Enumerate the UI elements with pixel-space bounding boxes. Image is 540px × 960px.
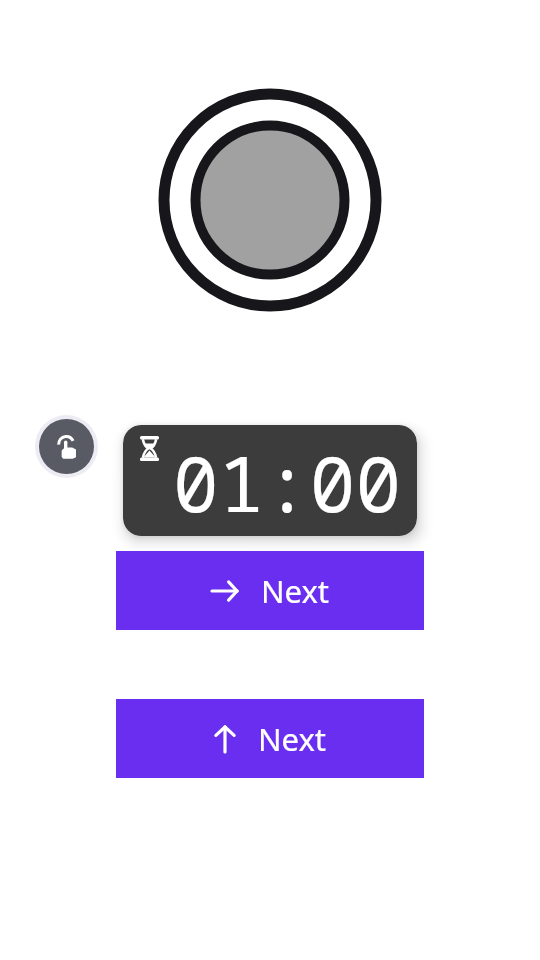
staticText: Next [261,570,330,612]
button[interactable]: Next [116,699,424,778]
button[interactable] [35,415,98,478]
button[interactable]: Next [116,551,424,630]
staticText: Next [258,718,327,760]
staticText: 01:00 [173,431,401,531]
button[interactable]: 01:00 [123,425,417,536]
